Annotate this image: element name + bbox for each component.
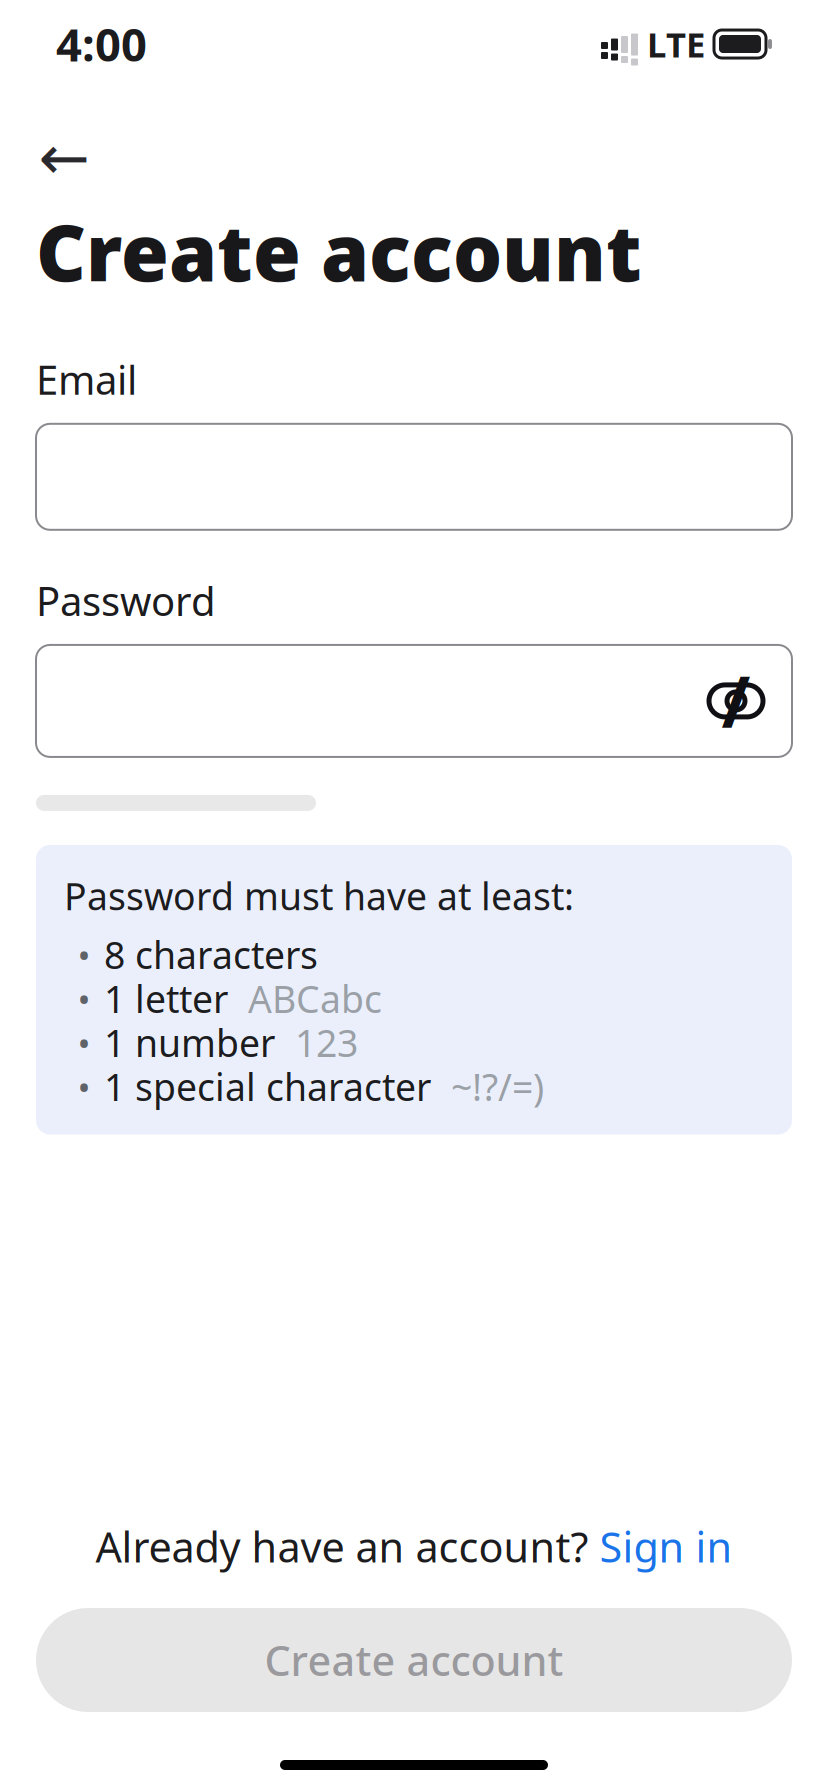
staticText: • [77,1019,90,1065]
staticText: Create account [264,1633,563,1687]
staticText: Create account [36,200,642,303]
staticText: Password must have at least: [64,871,574,920]
staticText: • [77,975,90,1021]
staticText: ABCabc [228,974,382,1023]
staticText: LTE [647,21,705,67]
staticText: Already have an account? [95,1519,599,1574]
button[interactable]: Create account [36,1608,792,1712]
staticText: 123 [275,1018,358,1067]
staticText: ← [38,123,89,193]
button[interactable]: Sign in [599,1519,732,1574]
staticText: Sign in [599,1519,732,1574]
staticText: • [77,931,90,977]
staticText: 4:00 [56,14,147,74]
staticText: Password [36,574,216,627]
button[interactable]: Show password [698,663,774,739]
staticText: ~!?/=) [431,1062,544,1111]
staticText: / [721,655,750,747]
staticText: 1 letter [104,974,228,1023]
button[interactable]: Back [26,126,102,190]
staticText: 8 characters [104,930,318,979]
staticText: 1 number [104,1018,275,1067]
staticText: • [77,1063,90,1109]
staticText: Email [36,353,137,406]
staticText: 1 special character [104,1062,431,1111]
